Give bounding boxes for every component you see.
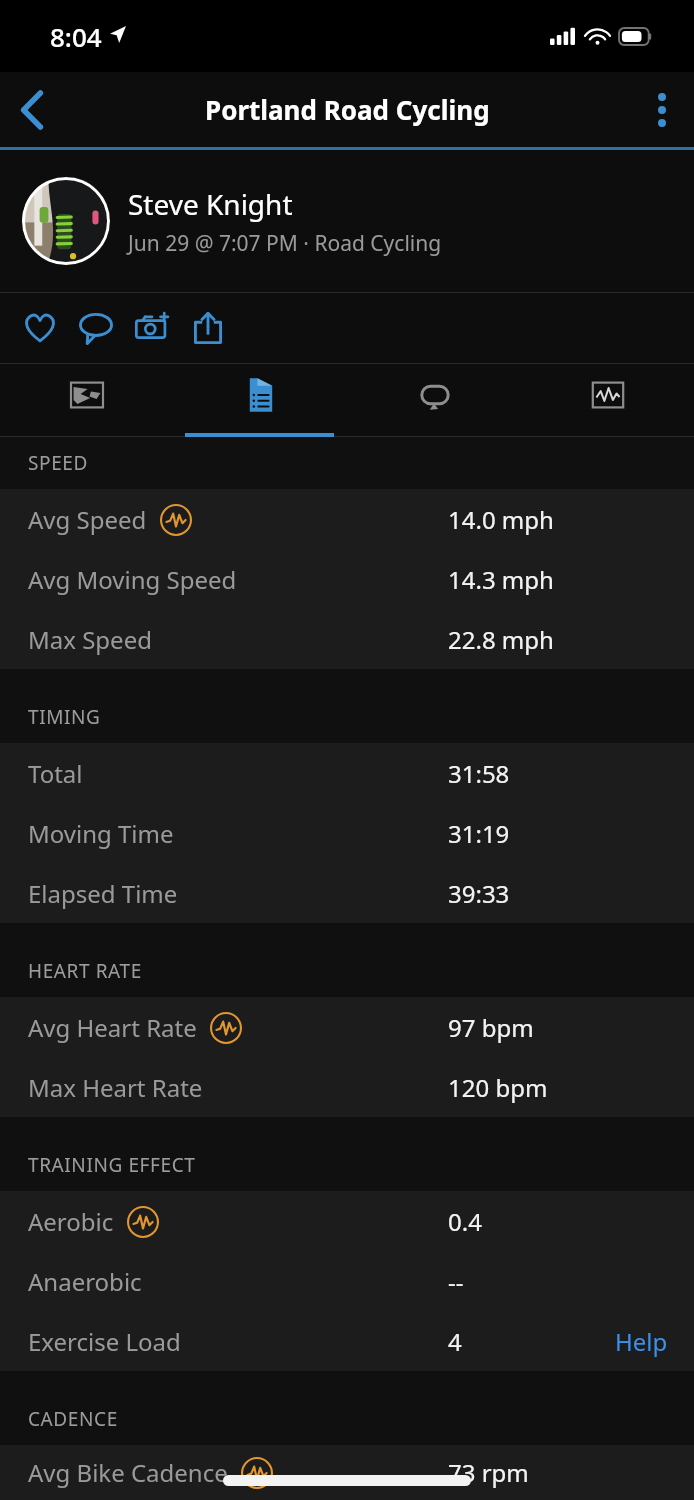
- button[interactable]: Anaerobic: [0, 1251, 694, 1311]
- button[interactable]: Avg Heart Rate: [0, 997, 694, 1057]
- staticText: Portland Road Cycling: [205, 92, 490, 127]
- staticText: HEART RATE: [28, 958, 142, 984]
- button[interactable]: Help: [605, 1317, 678, 1366]
- staticText: 31:19: [448, 817, 510, 850]
- staticText: 31:58: [448, 757, 510, 790]
- button[interactable]: More options: [630, 78, 694, 142]
- staticText: 22.8 mph: [448, 623, 554, 656]
- staticText: TIMING: [28, 704, 101, 730]
- button[interactable]: Charts: [522, 364, 694, 437]
- button[interactable]: Moving Time: [0, 803, 694, 863]
- staticText: Avg Bike Cadence: [28, 1456, 228, 1489]
- button[interactable]: Details: [174, 364, 348, 437]
- staticText: Aerobic: [28, 1205, 114, 1238]
- staticText: Avg Heart Rate: [28, 1011, 197, 1044]
- staticText: Jun 29 @ 7:07 PM · Road Cycling: [128, 229, 442, 258]
- button[interactable]: Max Speed: [0, 609, 694, 669]
- button[interactable]: Add photo: [124, 296, 180, 360]
- staticText: 39:33: [448, 877, 510, 910]
- button[interactable]: Exercise Load: [0, 1311, 694, 1371]
- staticText: TRAINING EFFECT: [28, 1152, 196, 1178]
- staticText: Max Heart Rate: [28, 1071, 203, 1104]
- staticText: --: [448, 1265, 464, 1298]
- button[interactable]: Comment: [68, 296, 124, 360]
- button[interactable]: Laps: [348, 364, 522, 437]
- staticText: Moving Time: [28, 817, 174, 850]
- button[interactable]: Like: [12, 296, 68, 360]
- button[interactable]: Avg Bike Cadence: [0, 1445, 694, 1500]
- staticText: Exercise Load: [28, 1325, 181, 1358]
- staticText: Steve Knight: [128, 185, 293, 223]
- staticText: 0.4: [448, 1205, 482, 1238]
- staticText: SPEED: [28, 450, 88, 476]
- button[interactable]: Map: [0, 364, 174, 437]
- staticText: Avg Speed: [28, 503, 147, 536]
- staticText: 14.0 mph: [448, 503, 554, 536]
- staticText: Help: [615, 1325, 668, 1358]
- button[interactable]: Total: [0, 743, 694, 803]
- staticText: 120 bpm: [448, 1071, 548, 1104]
- staticText: Max Speed: [28, 623, 152, 656]
- button[interactable]: Aerobic: [0, 1191, 694, 1251]
- staticText: Elapsed Time: [28, 877, 178, 910]
- button[interactable]: Steve Knight: [0, 150, 694, 292]
- staticText: 97 bpm: [448, 1011, 534, 1044]
- button[interactable]: Elapsed Time: [0, 863, 694, 923]
- button[interactable]: Avg Moving Speed: [0, 549, 694, 609]
- button[interactable]: Share: [180, 296, 236, 360]
- staticText: 4: [448, 1325, 462, 1358]
- staticText: Anaerobic: [28, 1265, 142, 1298]
- button[interactable]: Avg Speed: [0, 489, 694, 549]
- button[interactable]: Max Heart Rate: [0, 1057, 694, 1117]
- staticText: 73 rpm: [448, 1456, 529, 1489]
- staticText: 8:04: [50, 19, 102, 54]
- staticText: 14.3 mph: [448, 563, 554, 596]
- button[interactable]: Back: [0, 78, 64, 142]
- staticText: CADENCE: [28, 1406, 118, 1432]
- staticText: Avg Moving Speed: [28, 563, 237, 596]
- staticText: Total: [28, 757, 83, 790]
